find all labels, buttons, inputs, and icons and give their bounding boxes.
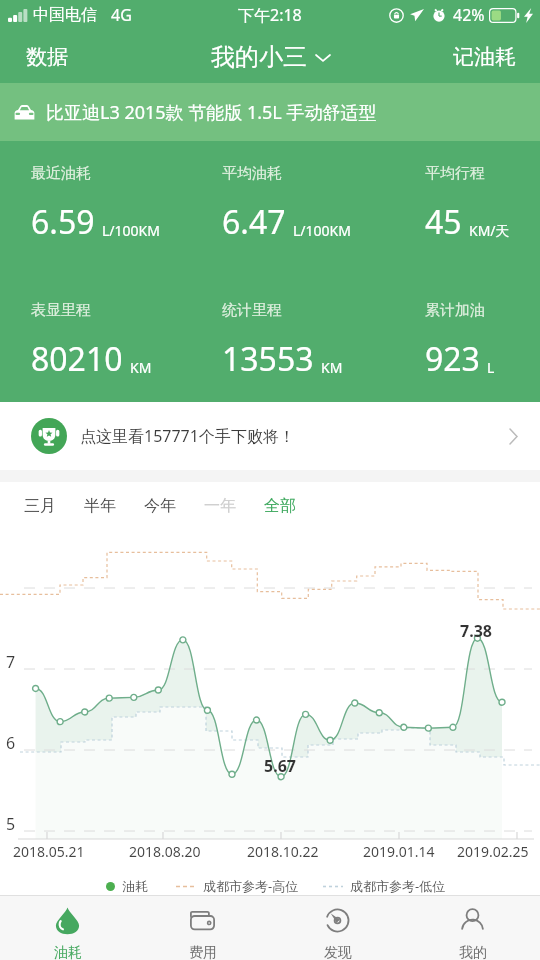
staticText: 2018.10.22 xyxy=(247,842,319,861)
staticText: 三月 xyxy=(24,496,56,516)
staticText: 2018.08.20 xyxy=(129,842,201,861)
staticText: 油耗 xyxy=(122,878,148,894)
button[interactable]: 发现 xyxy=(270,896,405,960)
staticText: 中国电信 xyxy=(33,5,97,25)
button[interactable]: 记油耗 xyxy=(429,31,540,83)
button[interactable]: Switch vehicle xyxy=(203,36,338,78)
staticText: 费用 xyxy=(189,944,217,960)
staticText: 数据 xyxy=(26,44,68,70)
staticText: 6 xyxy=(6,732,16,754)
staticText: 4G xyxy=(111,4,132,26)
staticText: KM/天 xyxy=(469,221,510,240)
button[interactable]: 数据 xyxy=(0,31,94,83)
staticText: 7 xyxy=(6,651,16,673)
staticText: 油耗 xyxy=(54,944,82,960)
staticText: 平均油耗 xyxy=(222,164,282,183)
staticText: KM xyxy=(321,358,343,377)
staticText: 今年 xyxy=(144,496,176,516)
staticText: 80210 xyxy=(31,337,123,381)
staticText: L xyxy=(487,358,495,377)
staticText: 最近油耗 xyxy=(31,164,91,183)
staticText: 13553 xyxy=(222,337,314,381)
staticText: 7.38 xyxy=(460,620,492,642)
staticText: 我的 xyxy=(459,944,487,960)
staticText: 5.67 xyxy=(264,755,296,777)
staticText: 2019.01.14 xyxy=(363,842,435,861)
staticText: 923 xyxy=(425,337,480,381)
staticText: 表显里程 xyxy=(31,301,91,320)
button[interactable]: 全部 xyxy=(250,486,310,526)
staticText: L/100KM xyxy=(293,221,351,240)
button[interactable]: 费用 xyxy=(135,896,270,960)
staticText: 记油耗 xyxy=(453,44,516,70)
staticText: 累计加油 xyxy=(425,301,485,320)
staticText: 6.47 xyxy=(222,200,286,244)
staticText: 平均行程 xyxy=(425,164,485,183)
staticText: 我的小三 xyxy=(211,42,307,72)
staticText: L/100KM xyxy=(102,221,160,240)
staticText: 发现 xyxy=(324,944,352,960)
staticText: 2019.02.25 xyxy=(457,842,529,861)
button[interactable]: 我的 xyxy=(405,896,540,960)
staticText: 统计里程 xyxy=(222,301,282,320)
staticText: 42% xyxy=(453,4,485,26)
staticText: 5 xyxy=(6,813,16,835)
staticText: 半年 xyxy=(84,496,116,516)
button[interactable]: 点这里看157771个手下败将！ xyxy=(0,402,540,470)
button[interactable]: 一年 xyxy=(190,486,250,526)
button[interactable]: 半年 xyxy=(70,486,130,526)
button[interactable]: 三月 xyxy=(10,486,70,526)
staticText: 比亚迪L3 2015款 节能版 1.5L 手动舒适型 xyxy=(46,100,377,125)
button[interactable]: 油耗 xyxy=(0,896,135,960)
staticText: 下午2:18 xyxy=(238,4,302,26)
staticText: 一年 xyxy=(204,496,236,516)
staticText: 成都市参考-低位 xyxy=(350,877,446,895)
staticText: 点这里看157771个手下败将！ xyxy=(80,425,295,447)
staticText: KM xyxy=(130,358,152,377)
button[interactable]: 比亚迪L3 2015款 节能版 1.5L 手动舒适型 xyxy=(0,83,540,141)
staticText: 2018.05.21 xyxy=(13,842,85,861)
staticText: 全部 xyxy=(264,496,296,516)
staticText: 45 xyxy=(425,200,462,244)
staticText: 6.59 xyxy=(31,200,95,244)
button[interactable]: 今年 xyxy=(130,486,190,526)
staticText: 成都市参考-高位 xyxy=(203,877,299,895)
